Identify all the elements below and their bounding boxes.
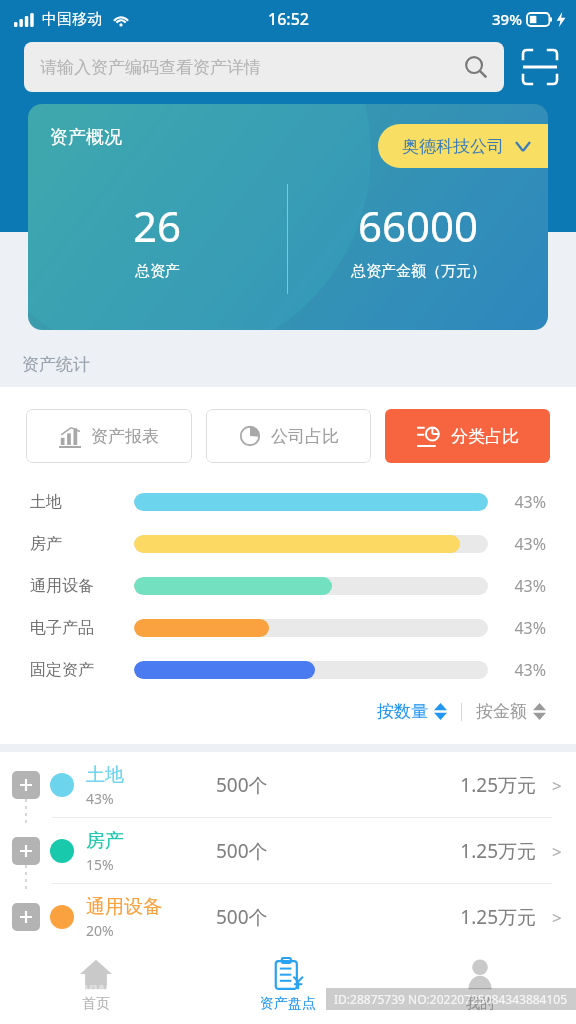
staticText: 39% [492,9,522,29]
button[interactable]: 资产概况 [28,104,548,330]
staticText: > [552,840,562,863]
button[interactable]: 我的 [384,946,576,1024]
staticText: 66000 [358,197,479,254]
staticText: 15% [86,855,114,874]
staticText: 我的 [466,995,494,1013]
staticText: 43% [488,491,546,513]
button[interactable]: 展开 房产 [0,818,576,884]
staticText: 土地 [86,763,124,787]
staticText: 43% [86,789,114,808]
button[interactable]: 展开 房产 [12,837,40,865]
staticText: > [552,774,562,797]
staticText: 1.25万元 [344,772,536,798]
staticText: 资产盘点 [260,995,316,1013]
staticText: 中国移动 [42,10,102,29]
staticText: 分类占比 [451,426,519,447]
staticText: 通用设备 [86,895,162,919]
staticText: 按金额 [476,701,527,722]
staticText: > [552,906,562,929]
staticText: 500个 [216,838,344,864]
staticText: 固定资产 [30,660,134,680]
staticText: 1.25万元 [344,838,536,864]
button[interactable]: 按数量 [377,697,447,726]
staticText: 请输入资产编码查看资产详情 [40,57,464,78]
button[interactable]: 公司占比 [206,409,371,463]
staticText: 43% [488,533,546,555]
staticText: 资产报表 [91,426,159,447]
staticText: 昵享网 www.nipic.cn [10,976,204,1002]
staticText: 按数量 [377,701,428,722]
staticText: 总资产金额（万元） [351,262,486,281]
button[interactable]: 资产盘点 [192,946,384,1024]
button[interactable]: 首页 [0,946,192,1024]
button[interactable]: 请输入资产编码查看资产详情 [24,42,504,92]
staticText: 43% [488,617,546,639]
button[interactable]: 按金额 [476,697,546,726]
button[interactable]: 展开 土地 [0,752,576,818]
button[interactable]: 展开 土地 [12,771,40,799]
staticText: 房产 [86,829,124,853]
button[interactable]: 扫一扫 [518,45,562,89]
staticText: 资产概况 [50,126,122,149]
staticText: 20% [86,921,114,940]
staticText: 电子产品 [30,618,134,638]
staticText: 16:52 [268,8,309,30]
staticText: 总资产 [135,262,180,281]
staticText: 房产 [30,534,134,554]
button[interactable]: 奥德科技公司 [378,124,548,168]
staticText: 土地 [30,492,134,512]
staticText: 资产统计 [22,354,90,375]
staticText: 公司占比 [271,426,339,447]
staticText: 通用设备 [30,576,134,596]
staticText: 奥德科技公司 [402,136,504,157]
staticText: 首页 [82,995,110,1013]
staticText: 43% [488,659,546,681]
staticText: 26 [133,197,182,254]
button[interactable]: 资产报表 [26,409,192,463]
button[interactable]: 展开 通用设备 [12,903,40,931]
staticText: 43% [488,575,546,597]
button[interactable]: 展开 通用设备 [0,884,576,950]
staticText: 1.25万元 [344,904,536,930]
button[interactable]: 分类占比 [385,409,550,463]
staticText: ID:28875739 NO:20220725084343884105 [334,991,568,1007]
staticText: 500个 [216,772,344,798]
staticText: 500个 [216,904,344,930]
